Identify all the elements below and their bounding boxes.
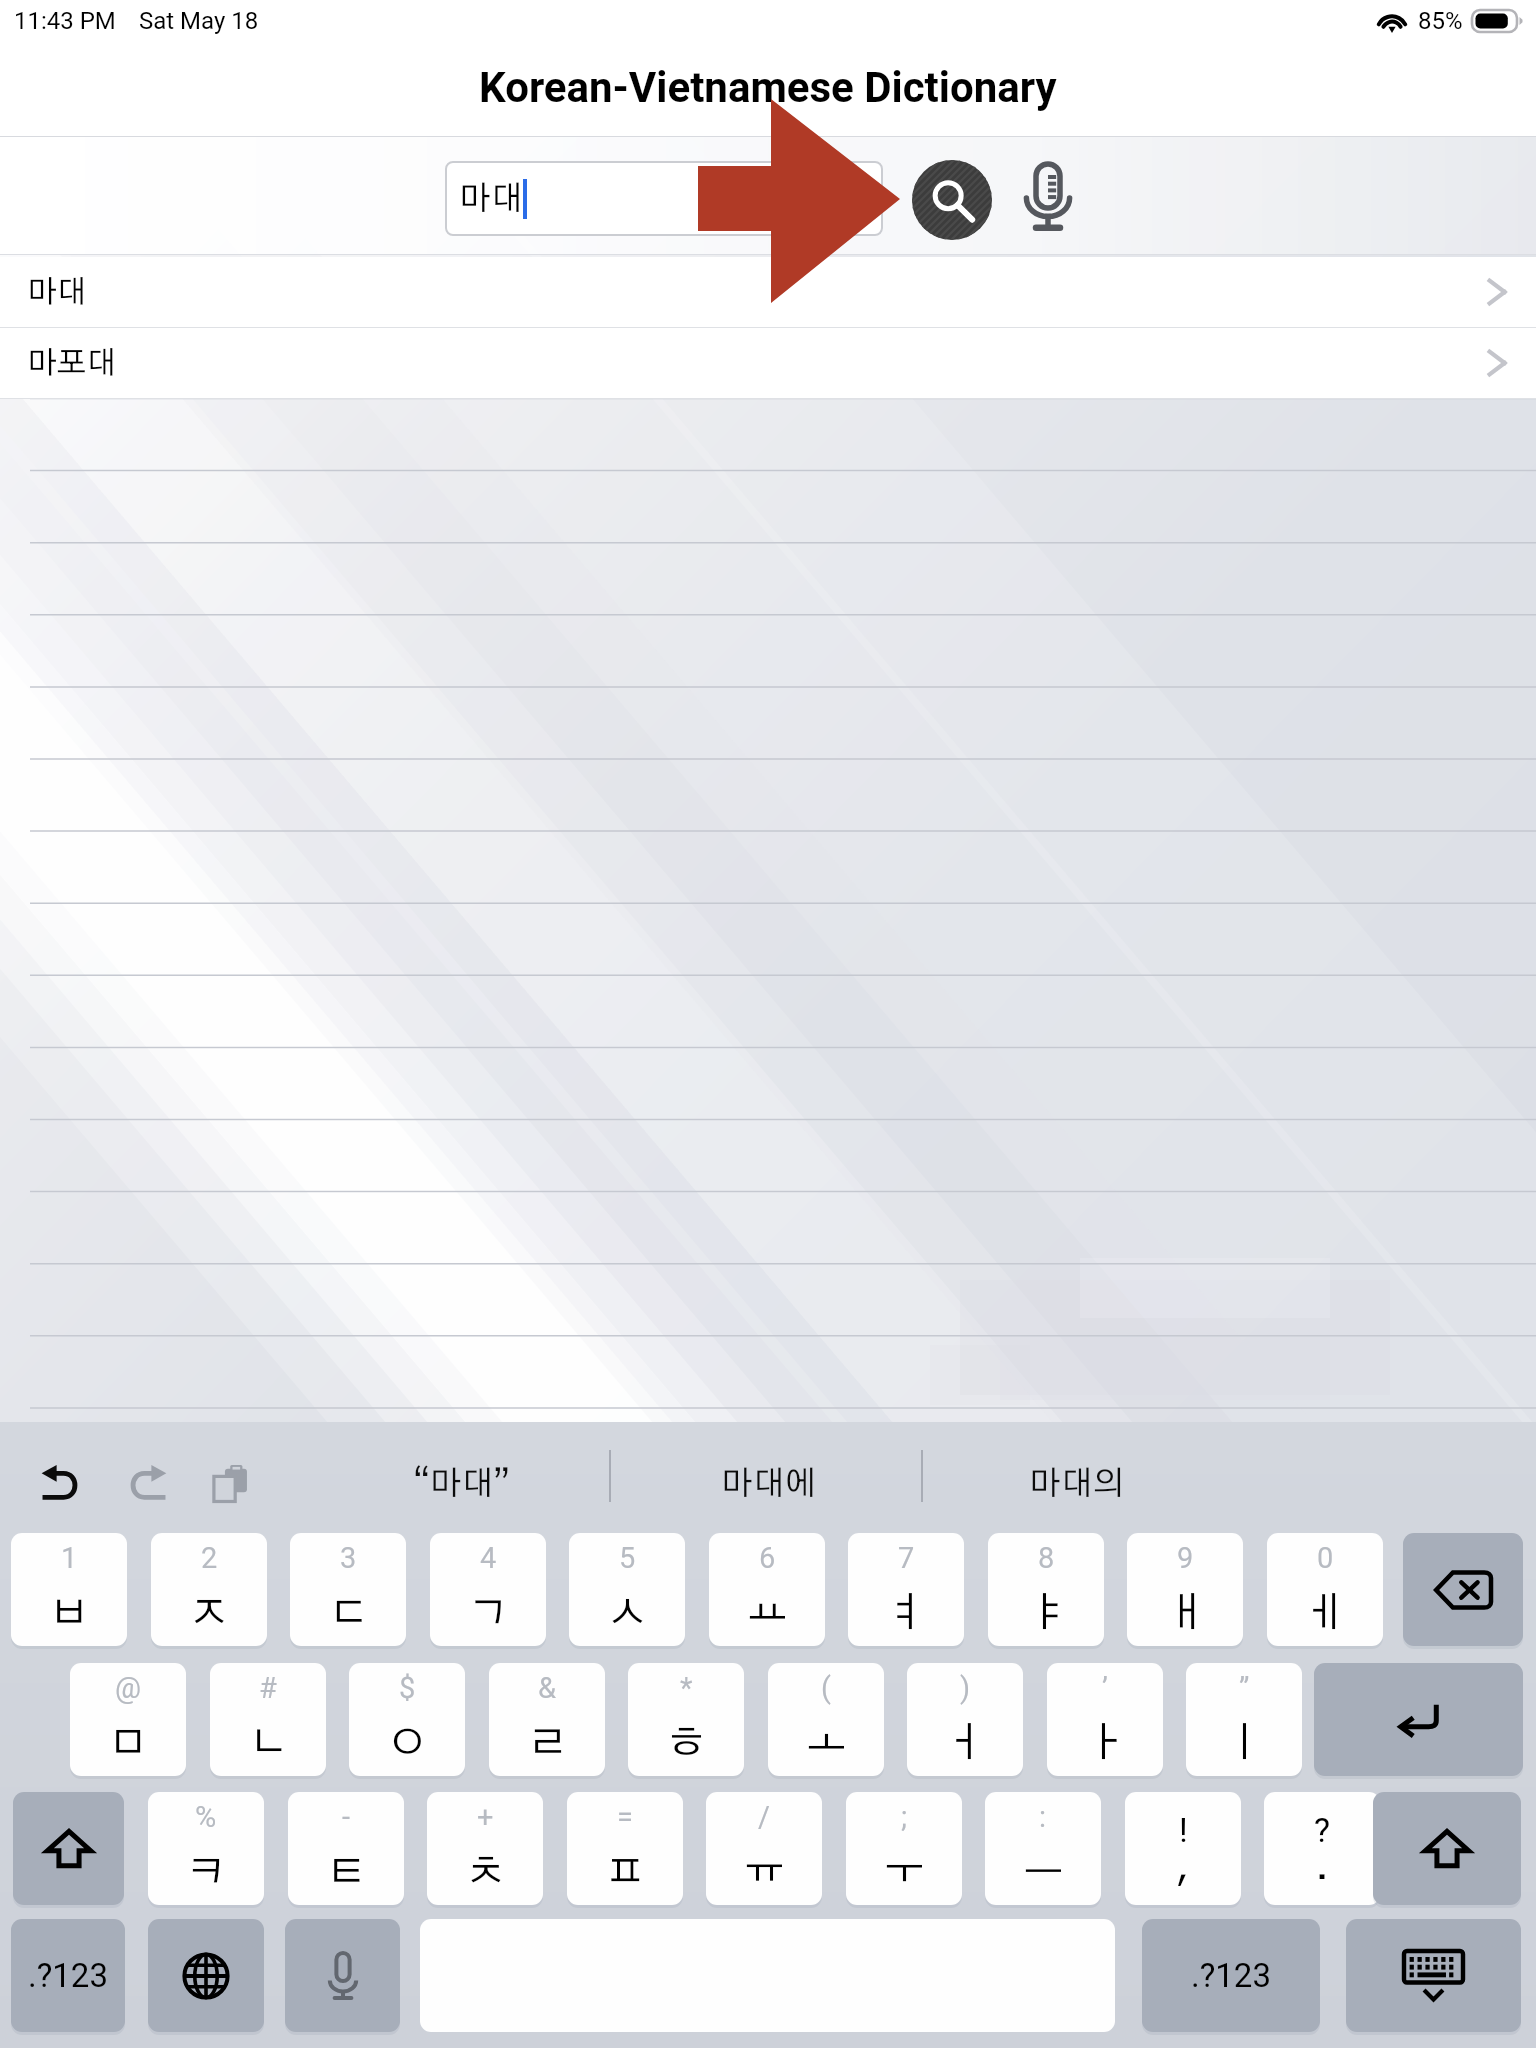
button[interactable]: ”	[1186, 1663, 1302, 1776]
button[interactable]: !	[1125, 1792, 1241, 1905]
button[interactable]: 0	[1267, 1533, 1383, 1646]
staticText: ㄹ	[527, 1723, 568, 1764]
button[interactable]: Shift	[13, 1792, 124, 1905]
button[interactable]: Redo	[115, 1452, 179, 1516]
staticText: ㅑ	[1026, 1593, 1067, 1634]
staticText: 85%	[1418, 7, 1463, 35]
staticText: ㅔ	[1305, 1593, 1346, 1634]
button[interactable]: 7	[848, 1533, 964, 1646]
staticText: 마대의	[1029, 1468, 1125, 1501]
button[interactable]: 5	[569, 1533, 685, 1646]
staticText: 5	[619, 1541, 636, 1575]
button[interactable]: $	[349, 1663, 465, 1776]
button[interactable]: 8	[988, 1533, 1104, 1646]
staticText: *	[680, 1671, 693, 1705]
button[interactable]: Undo	[29, 1452, 93, 1516]
staticText: ㅅ	[607, 1593, 648, 1634]
button[interactable]: Hide keyboard	[1346, 1919, 1521, 2032]
staticText: =	[617, 1800, 633, 1834]
button[interactable]: 마포대	[0, 328, 1536, 398]
button[interactable]: 3	[290, 1533, 406, 1646]
staticText: ㄱ	[468, 1593, 509, 1634]
staticText: ㅊ	[465, 1852, 506, 1893]
staticText: ㅛ	[747, 1593, 788, 1634]
staticText: 마대에	[721, 1468, 817, 1501]
staticText: ㅈ	[189, 1593, 230, 1634]
staticText: &	[538, 1671, 557, 1705]
button[interactable]: 마대에	[614, 1430, 924, 1538]
button[interactable]: “마대”	[310, 1430, 613, 1538]
button[interactable]: -	[288, 1792, 404, 1905]
staticText: 마대	[27, 277, 87, 308]
button[interactable]: @	[70, 1663, 186, 1776]
button[interactable]: Dictate	[285, 1919, 400, 2032]
button[interactable]: 마대	[0, 257, 1536, 327]
staticText: ”	[1239, 1671, 1250, 1705]
button[interactable]: ?	[1264, 1792, 1380, 1905]
staticText: (	[821, 1671, 831, 1705]
staticText: ㅗ	[806, 1723, 847, 1764]
staticText: ㄷ	[328, 1593, 369, 1634]
button[interactable]: 2	[151, 1533, 267, 1646]
staticText: :	[1039, 1800, 1047, 1834]
staticText: .?123	[28, 1956, 108, 1995]
button[interactable]: Shift	[1373, 1792, 1521, 1905]
staticText: ㅏ	[1085, 1723, 1126, 1764]
button[interactable]: Voice search	[1008, 155, 1088, 235]
button[interactable]: 6	[709, 1533, 825, 1646]
button[interactable]: :	[985, 1792, 1101, 1905]
button[interactable]: .?123	[11, 1919, 125, 2032]
button[interactable]: %	[148, 1792, 264, 1905]
staticText: “마대”	[413, 1468, 510, 1501]
staticText: ’	[1102, 1671, 1108, 1705]
staticText: -	[342, 1800, 351, 1834]
button[interactable]: Search	[912, 160, 992, 240]
staticText: $	[399, 1671, 416, 1705]
button[interactable]: Return	[1314, 1663, 1523, 1776]
button[interactable]: 1	[11, 1533, 127, 1646]
staticText: ㄴ	[248, 1723, 289, 1764]
staticText: ㅓ	[945, 1723, 986, 1764]
staticText: %	[195, 1800, 217, 1834]
staticText: Sat May 18	[139, 7, 259, 35]
button[interactable]: Backspace	[1403, 1533, 1523, 1646]
staticText: 6	[759, 1541, 776, 1575]
button[interactable]: (	[768, 1663, 884, 1776]
staticText: #	[259, 1671, 277, 1705]
staticText: ?	[1314, 1810, 1331, 1850]
staticText: !	[1179, 1810, 1188, 1850]
button[interactable]: 9	[1127, 1533, 1243, 1646]
button[interactable]: &	[489, 1663, 605, 1776]
button[interactable]: ;	[846, 1792, 962, 1905]
button[interactable]: *	[628, 1663, 744, 1776]
staticText: ㅜ	[884, 1852, 925, 1893]
button[interactable]: Switch keyboard	[148, 1919, 264, 2032]
button[interactable]: +	[427, 1792, 543, 1905]
button[interactable]: 마대의	[924, 1430, 1230, 1538]
staticText: 마대	[459, 183, 523, 216]
staticText: ㅐ	[1165, 1593, 1206, 1634]
button[interactable]: .?123	[1142, 1919, 1320, 2032]
staticText: ㅇ	[387, 1723, 428, 1764]
staticText: ㅣ	[1224, 1723, 1265, 1764]
staticText: ,	[1176, 1846, 1191, 1887]
button[interactable]: 마대	[445, 161, 883, 236]
button[interactable]: ’	[1047, 1663, 1163, 1776]
button[interactable]: /	[706, 1792, 822, 1905]
button[interactable]: 4	[430, 1533, 546, 1646]
staticText: ㅕ	[886, 1593, 927, 1634]
button[interactable]: =	[567, 1792, 683, 1905]
staticText: ㅎ	[666, 1723, 707, 1764]
staticText: ㅂ	[49, 1593, 90, 1634]
staticText: +	[477, 1800, 494, 1834]
button[interactable]: Paste	[199, 1452, 263, 1516]
staticText: @	[115, 1671, 142, 1705]
button[interactable]: #	[210, 1663, 326, 1776]
staticText: 7	[898, 1541, 915, 1575]
staticText: .?123	[1191, 1956, 1271, 1995]
staticText: ㅋ	[186, 1852, 227, 1893]
staticText: 마포대	[27, 348, 117, 379]
button[interactable]: )	[907, 1663, 1023, 1776]
staticText: 3	[340, 1541, 357, 1575]
